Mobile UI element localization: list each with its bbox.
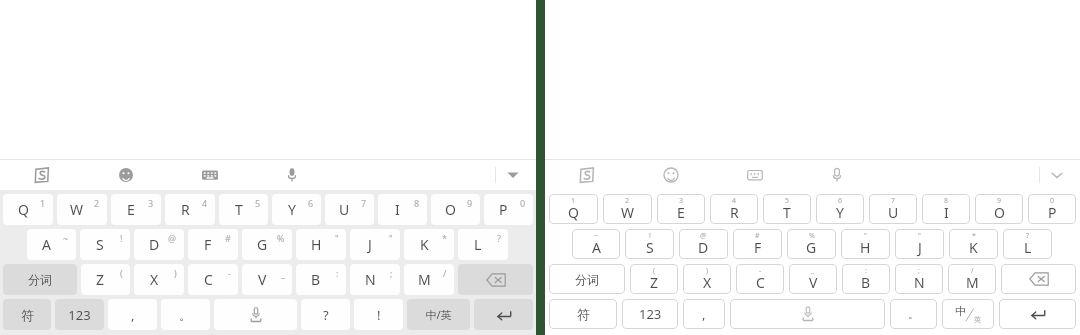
button[interactable]: Q bbox=[3, 194, 53, 225]
button[interactable]: Sogou bbox=[26, 160, 58, 190]
button[interactable]: L bbox=[458, 229, 508, 260]
staticText: 7 bbox=[891, 196, 896, 206]
button[interactable]: Space bbox=[214, 299, 297, 330]
button[interactable]: " bbox=[895, 229, 944, 259]
button[interactable]: X bbox=[134, 264, 184, 295]
button[interactable]: * bbox=[949, 229, 998, 259]
button[interactable]: 。 bbox=[890, 299, 937, 329]
staticText: R bbox=[730, 203, 739, 222]
button[interactable]: - bbox=[736, 264, 784, 294]
button[interactable]: T bbox=[219, 194, 268, 225]
button[interactable]: Hide keyboard bbox=[496, 160, 530, 190]
button[interactable]: : bbox=[842, 264, 890, 294]
staticText: O bbox=[445, 200, 456, 219]
button[interactable]: 2 bbox=[603, 194, 652, 224]
button[interactable]: ? bbox=[1003, 229, 1052, 259]
button[interactable]: Keyboard layout bbox=[739, 160, 771, 190]
button[interactable]: K bbox=[404, 229, 454, 260]
button[interactable]: 8 bbox=[922, 194, 970, 224]
button[interactable]: P bbox=[484, 194, 533, 225]
staticText: % bbox=[809, 231, 815, 241]
staticText: B bbox=[311, 270, 321, 289]
button[interactable]: 符 bbox=[549, 299, 617, 329]
staticText: : bbox=[336, 267, 339, 279]
button[interactable]: # bbox=[733, 229, 782, 259]
button[interactable]: ! bbox=[354, 299, 403, 330]
button[interactable]: ( bbox=[630, 264, 678, 294]
button[interactable]: ? bbox=[301, 299, 350, 330]
button[interactable]: / bbox=[948, 264, 996, 294]
button[interactable]: O bbox=[431, 194, 480, 225]
button[interactable]: I bbox=[378, 194, 427, 225]
button[interactable]: , bbox=[683, 299, 725, 329]
button[interactable]: 7 bbox=[869, 194, 917, 224]
button[interactable]: 0 bbox=[1028, 194, 1076, 224]
button[interactable]: Voice input bbox=[276, 160, 308, 190]
button[interactable]: Space bbox=[730, 299, 885, 329]
button[interactable]: ) bbox=[683, 264, 731, 294]
button[interactable]: W bbox=[57, 194, 107, 225]
button[interactable]: 9 bbox=[975, 194, 1023, 224]
button[interactable]: H bbox=[296, 229, 346, 260]
button[interactable]: A bbox=[27, 229, 76, 260]
staticText: G bbox=[806, 238, 817, 257]
staticText: 3 bbox=[148, 197, 154, 209]
button[interactable]: Emoji bbox=[110, 160, 142, 190]
button[interactable]: ~ bbox=[572, 229, 620, 259]
staticText: Y bbox=[836, 203, 844, 222]
button[interactable]: Emoji bbox=[655, 160, 687, 190]
button[interactable]: F bbox=[188, 229, 238, 260]
staticText: D bbox=[149, 235, 160, 254]
button[interactable]: Enter bbox=[999, 299, 1076, 329]
button[interactable]: E bbox=[111, 194, 161, 225]
button[interactable]: 5 bbox=[763, 194, 811, 224]
button[interactable]: 4 bbox=[710, 194, 758, 224]
button[interactable]: 符 bbox=[3, 299, 51, 330]
staticText: A bbox=[592, 238, 601, 257]
staticText: " bbox=[389, 232, 393, 244]
button[interactable]: , bbox=[108, 299, 157, 330]
button[interactable]: Delete bbox=[458, 264, 533, 295]
staticText: 。 bbox=[179, 307, 192, 323]
button[interactable]: U bbox=[325, 194, 374, 225]
button[interactable]: 中/英 bbox=[407, 299, 470, 330]
button[interactable]: Z bbox=[81, 264, 130, 295]
button[interactable]: J bbox=[350, 229, 400, 260]
staticText: E bbox=[677, 203, 685, 222]
button[interactable]: @ bbox=[679, 229, 728, 259]
staticText: @ bbox=[168, 232, 177, 244]
staticText: Y bbox=[288, 200, 296, 219]
button[interactable]: 6 bbox=[816, 194, 864, 224]
button[interactable]: Keyboard layout bbox=[194, 160, 226, 190]
button[interactable]: S bbox=[80, 229, 130, 260]
button[interactable]: 1 bbox=[549, 194, 598, 224]
button[interactable]: V bbox=[242, 264, 292, 295]
button[interactable]: % bbox=[787, 229, 836, 259]
staticText: N bbox=[914, 273, 925, 292]
button[interactable]: Y bbox=[272, 194, 321, 225]
button[interactable]: Enter bbox=[474, 299, 533, 330]
button[interactable]: C bbox=[188, 264, 238, 295]
button[interactable]: 123 bbox=[622, 299, 678, 329]
button[interactable]: M bbox=[404, 264, 454, 295]
button[interactable]: 分词 bbox=[549, 264, 625, 294]
button[interactable]: 123 bbox=[55, 299, 104, 330]
button[interactable]: Voice input bbox=[821, 160, 853, 190]
button[interactable]: ; bbox=[895, 264, 943, 294]
button[interactable]: R bbox=[165, 194, 215, 225]
button[interactable]: G bbox=[242, 229, 292, 260]
button[interactable]: _ bbox=[789, 264, 837, 294]
button[interactable]: N bbox=[350, 264, 400, 295]
button[interactable]: 。 bbox=[161, 299, 210, 330]
button[interactable]: Hide keyboard bbox=[1040, 160, 1074, 190]
button[interactable]: 分词 bbox=[3, 264, 77, 295]
button[interactable]: 3 bbox=[657, 194, 705, 224]
button[interactable]: 中 bbox=[942, 299, 994, 329]
staticText: 1 bbox=[571, 196, 576, 206]
button[interactable]: " bbox=[841, 229, 890, 259]
button[interactable]: B bbox=[296, 264, 346, 295]
button[interactable]: D bbox=[134, 229, 184, 260]
button[interactable]: Sogou bbox=[571, 160, 603, 190]
button[interactable]: Delete bbox=[1001, 264, 1076, 294]
button[interactable]: ! bbox=[625, 229, 674, 259]
